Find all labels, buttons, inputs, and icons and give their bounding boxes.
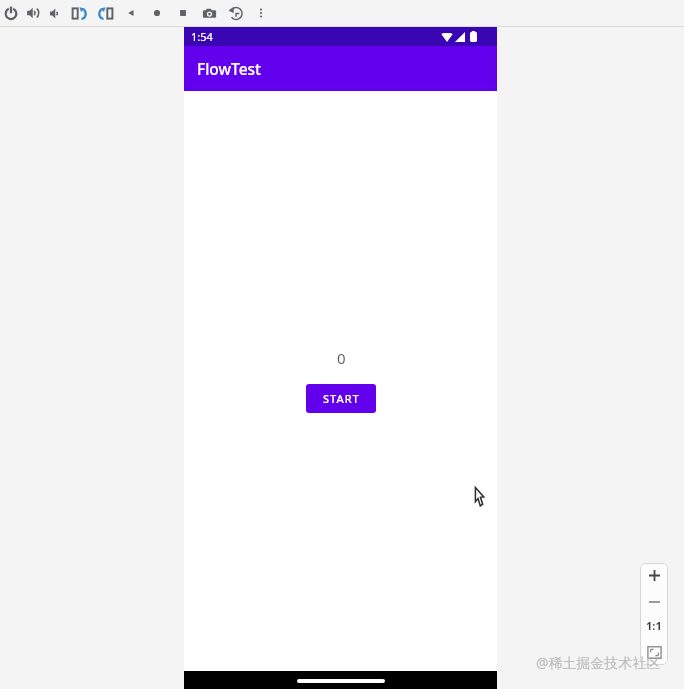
staticText: @稀土掘金技术社区 bbox=[536, 653, 661, 672]
staticText: 0 bbox=[337, 348, 346, 368]
button[interactable]: Volume up bbox=[22, 0, 44, 26]
button[interactable]: START bbox=[306, 384, 376, 413]
button[interactable]: Screenshot bbox=[198, 0, 220, 26]
button[interactable]: Zoom to fit bbox=[640, 639, 668, 665]
button[interactable]: Actual size bbox=[640, 613, 668, 639]
button[interactable]: Overview bbox=[172, 0, 194, 26]
staticText: 1:54 bbox=[191, 29, 213, 44]
button[interactable]: Zoom out bbox=[640, 588, 668, 613]
staticText: 1:1 bbox=[646, 618, 662, 633]
button[interactable]: History bbox=[224, 0, 246, 26]
button[interactable]: Home bbox=[146, 0, 168, 26]
staticText: FlowTest bbox=[197, 58, 262, 79]
staticText: START bbox=[323, 391, 360, 406]
button[interactable]: Zoom in bbox=[640, 563, 668, 588]
button[interactable]: Volume down bbox=[44, 0, 66, 26]
button[interactable]: Back bbox=[120, 0, 142, 26]
button[interactable]: More bbox=[250, 0, 272, 26]
button[interactable]: Rotate left bbox=[68, 0, 90, 26]
button[interactable]: Rotate right bbox=[94, 0, 116, 26]
button[interactable]: Power bbox=[0, 0, 22, 26]
